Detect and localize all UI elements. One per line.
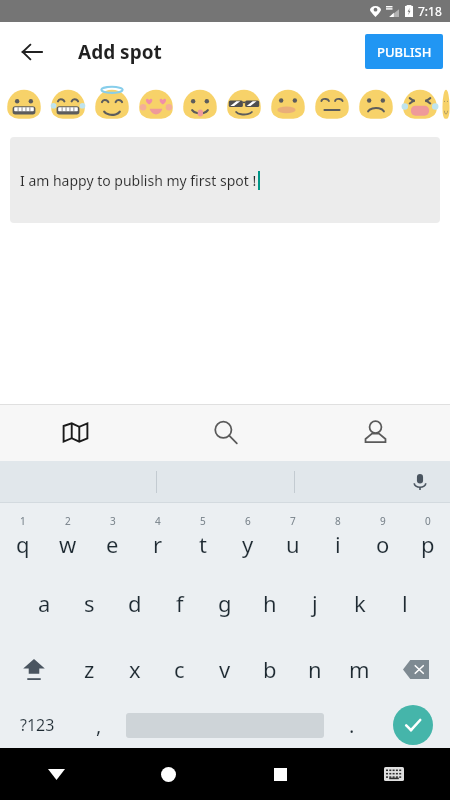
staticText: 2 — [65, 514, 71, 528]
button[interactable]: Emoji 9 — [398, 81, 442, 129]
button[interactable]: Home — [112, 748, 224, 800]
staticText: p — [421, 529, 435, 559]
button[interactable]: 5 — [180, 503, 225, 570]
staticText: 9 — [380, 514, 386, 528]
button[interactable]: , — [75, 702, 122, 748]
staticText: v — [219, 654, 231, 684]
button[interactable]: Back — [10, 30, 54, 74]
button[interactable]: 0 — [405, 503, 450, 570]
button[interactable]: 8 — [315, 503, 360, 570]
button[interactable]: 6 — [225, 503, 270, 570]
button[interactable]: s — [67, 570, 112, 636]
button[interactable]: Recents — [224, 748, 337, 800]
button[interactable]: l — [382, 570, 427, 636]
staticText: z — [84, 654, 95, 684]
staticText: 3 — [110, 514, 116, 528]
button[interactable]: Voice input — [406, 468, 434, 496]
button[interactable]: . — [328, 702, 375, 748]
staticText: 6 — [245, 514, 251, 528]
button[interactable]: f — [157, 570, 202, 636]
button[interactable]: Emoji 0 — [2, 81, 46, 129]
button[interactable]: Done — [375, 702, 450, 748]
staticText: b — [263, 654, 277, 684]
staticText: 7 — [290, 514, 296, 528]
button[interactable]: m — [337, 636, 382, 702]
button[interactable]: c — [157, 636, 202, 702]
button[interactable]: Backspace — [382, 636, 450, 702]
staticText: d — [128, 588, 142, 618]
staticText: 4 — [155, 514, 161, 528]
button[interactable]: Profile — [300, 404, 450, 461]
button[interactable]: Emoji 7 — [310, 81, 354, 129]
button[interactable]: j — [292, 570, 337, 636]
button[interactable]: Map — [0, 404, 150, 461]
staticText: j — [312, 588, 318, 618]
staticText: . — [349, 712, 355, 739]
staticText: Add spot — [78, 39, 162, 65]
button[interactable]: d — [112, 570, 157, 636]
button[interactable]: 7 — [270, 503, 315, 570]
button[interactable]: n — [292, 636, 337, 702]
button[interactable]: Emoji 10 — [442, 81, 450, 129]
button[interactable]: Emoji 6 — [266, 81, 310, 129]
button[interactable]: Hide keyboard — [0, 748, 112, 800]
button[interactable]: v — [202, 636, 247, 702]
button[interactable]: h — [247, 570, 292, 636]
button[interactable]: ?123 — [0, 702, 75, 748]
staticText: x — [129, 654, 141, 684]
button[interactable]: 2 — [45, 503, 90, 570]
button[interactable]: Switch keyboard — [337, 748, 450, 800]
staticText: h — [263, 588, 277, 618]
button[interactable] — [122, 702, 328, 748]
staticText: I am happy to publish my first spot ! — [20, 171, 257, 190]
button[interactable]: b — [247, 636, 292, 702]
staticText: l — [402, 588, 408, 618]
button[interactable]: Emoji 1 — [46, 81, 90, 129]
staticText: k — [354, 588, 366, 618]
staticText: r — [153, 529, 163, 559]
button[interactable]: x — [112, 636, 157, 702]
button[interactable]: Shift — [0, 636, 67, 702]
staticText: f — [176, 588, 184, 618]
button[interactable]: 3 — [90, 503, 135, 570]
button[interactable]: Emoji 3 — [134, 81, 178, 129]
button[interactable]: Emoji 4 — [178, 81, 222, 129]
staticText: o — [376, 529, 390, 559]
button[interactable]: Emoji 8 — [354, 81, 398, 129]
staticText: e — [106, 529, 119, 559]
button[interactable]: g — [202, 570, 247, 636]
button[interactable]: 9 — [360, 503, 405, 570]
button[interactable]: 1 — [0, 503, 45, 570]
button[interactable]: Search — [150, 404, 300, 461]
staticText: s — [84, 588, 95, 618]
staticText: a — [38, 588, 51, 618]
staticText: ?123 — [20, 714, 55, 736]
button[interactable]: PUBLISH — [365, 34, 443, 69]
staticText: 5 — [200, 514, 206, 528]
button[interactable]: z — [67, 636, 112, 702]
staticText: 1 — [20, 514, 26, 528]
staticText: y — [242, 529, 254, 559]
staticText: , — [96, 712, 102, 739]
staticText: m — [349, 654, 370, 684]
staticText: 8 — [335, 514, 341, 528]
staticText: c — [174, 654, 185, 684]
staticText: u — [286, 529, 300, 559]
staticText: t — [199, 529, 207, 559]
button[interactable]: a — [22, 570, 67, 636]
staticText: n — [308, 654, 322, 684]
staticText: PUBLISH — [377, 43, 432, 61]
button[interactable]: Emoji 5 — [222, 81, 266, 129]
button[interactable]: Emoji 2 — [90, 81, 134, 129]
staticText: q — [16, 529, 30, 559]
staticText: w — [59, 529, 77, 559]
button[interactable]: k — [337, 570, 382, 636]
staticText: i — [335, 529, 341, 559]
staticText: 0 — [425, 514, 431, 528]
staticText: 7:18 — [418, 3, 442, 19]
staticText: g — [218, 588, 232, 618]
button[interactable]: 4 — [135, 503, 180, 570]
button[interactable]: I am happy to publish my first spot ! — [10, 137, 440, 223]
